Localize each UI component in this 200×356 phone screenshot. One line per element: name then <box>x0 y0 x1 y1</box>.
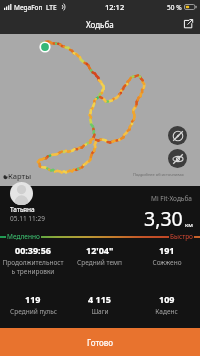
button[interactable]: Show compass <box>168 126 187 145</box>
staticText: LTE <box>46 3 57 12</box>
staticText: 50 % <box>167 3 182 12</box>
button[interactable]: Готово <box>0 328 200 356</box>
staticText: 05.11 11:29 <box>10 214 45 223</box>
staticText: 191 <box>159 244 175 256</box>
staticText: Сожжено <box>152 258 182 267</box>
staticText: 3,30 <box>144 205 183 232</box>
staticText: Ходьба <box>86 19 114 30</box>
button[interactable]: Share <box>181 17 195 31</box>
staticText: 109 <box>159 293 175 305</box>
button[interactable]: Hide route <box>168 149 187 168</box>
staticText: MegaFon <box>14 3 43 12</box>
staticText: 4 115 <box>88 293 111 305</box>
staticText: Карты <box>8 171 32 181</box>
button[interactable]: Подробнее об источниках <box>133 172 184 177</box>
staticText: Продолжительность тренировки <box>2 258 64 276</box>
staticText: Татьяна <box>10 205 35 214</box>
staticText: 12'04" <box>86 244 114 256</box>
staticText: Средний темп <box>77 258 122 267</box>
staticText: Каденс <box>155 307 178 316</box>
staticText: Mi Fit·Ходьба <box>151 194 192 203</box>
staticText: 119 <box>25 293 41 305</box>
staticText: км <box>185 221 193 229</box>
staticText: Быстро <box>170 232 193 241</box>
staticText: Шаги <box>91 307 109 316</box>
staticText: Готово <box>87 337 114 348</box>
staticText: 00:39:56 <box>15 244 51 256</box>
staticText: Медленно <box>7 232 40 241</box>
staticText: 12:12 <box>105 2 125 12</box>
staticText: Средний пульс <box>10 307 57 316</box>
